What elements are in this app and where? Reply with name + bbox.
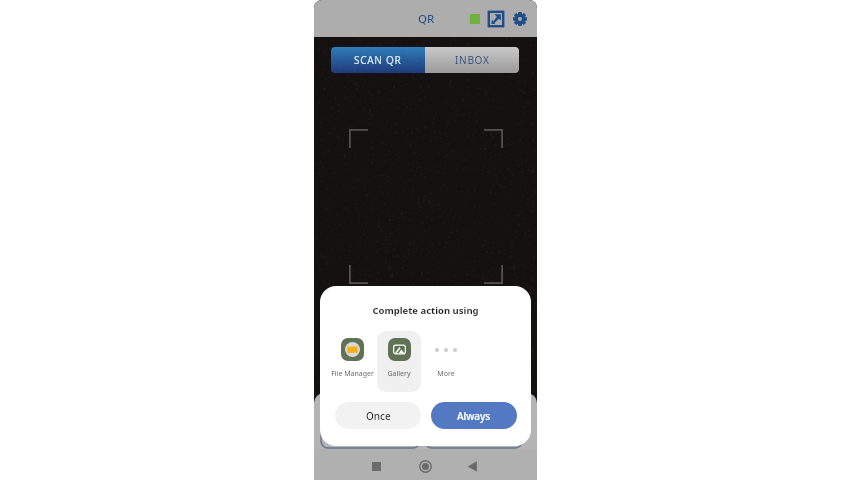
button[interactable]: Recent apps — [362, 452, 390, 480]
button[interactable]: Status indicator — [464, 8, 486, 30]
button[interactable]: File Manager — [330, 338, 374, 392]
button[interactable]: Gallery — [425, 406, 522, 448]
button[interactable]: Always — [431, 402, 517, 429]
button[interactable]: SCAN QR — [331, 47, 425, 73]
staticText: File Manager — [331, 369, 374, 379]
button[interactable]: Open externally — [485, 8, 507, 30]
button[interactable]: Gallery — [377, 338, 421, 392]
button[interactable]: More — [423, 338, 467, 392]
staticText: QR — [418, 11, 435, 27]
staticText: Always — [457, 409, 491, 423]
staticText: Once — [366, 409, 391, 423]
button[interactable]: Once — [335, 402, 421, 429]
button[interactable]: Home — [411, 452, 439, 480]
button[interactable]: Back — [458, 452, 486, 480]
staticText: More — [437, 369, 455, 379]
button[interactable]: Settings — [509, 8, 531, 30]
staticText: Gallery — [387, 369, 411, 379]
button[interactable]: Flash — [321, 406, 420, 448]
staticText: INBOX — [455, 53, 490, 67]
staticText: SCAN QR — [354, 53, 402, 67]
staticText: Complete action using — [320, 304, 531, 317]
button[interactable]: INBOX — [425, 47, 519, 73]
